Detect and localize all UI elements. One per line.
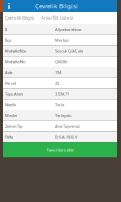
staticText: 22 xyxy=(55,80,59,86)
staticText: İl xyxy=(5,27,7,32)
staticText: Merkez xyxy=(55,37,69,43)
staticText: Pafta xyxy=(5,134,13,140)
staticText: Mahalle/No xyxy=(5,59,25,64)
button[interactable]: Çevrelik Bilgisi xyxy=(5,12,34,24)
staticText: Mahalle/Köy xyxy=(5,48,26,54)
staticText: Çevrelik Bilgisi xyxy=(5,15,34,21)
button[interactable]: Arsa/Bit Listesi xyxy=(41,12,73,24)
staticText: B:0-A-18-B-V xyxy=(55,134,77,140)
staticText: İlçe xyxy=(5,37,11,43)
staticText: (26636) xyxy=(55,59,67,64)
button[interactable]: Info xyxy=(3,0,15,12)
staticText: 3.594,71 xyxy=(55,91,69,97)
staticText: Afyonkarahisar xyxy=(55,27,82,32)
staticText: Parsel xyxy=(5,80,16,86)
staticText: Sevcuk Göl/Çaltı xyxy=(55,48,83,54)
staticText: Tapu Alanı xyxy=(5,91,23,97)
staticText: Arsa/Bit Listesi xyxy=(41,15,73,21)
staticText: Favorilere ekle xyxy=(46,147,73,153)
staticText: Nitelik xyxy=(5,102,16,107)
button[interactable]: Favorilere ekle xyxy=(3,142,117,157)
staticText: Zemin Tip xyxy=(5,123,22,129)
staticText: Tarla xyxy=(55,102,64,107)
staticText: 194 xyxy=(55,70,61,75)
staticText: Mevkii xyxy=(5,113,17,118)
staticText: Çevrelik Bilgisi xyxy=(35,2,78,10)
staticText: Ana Taşınmaz xyxy=(55,123,80,129)
staticText: Tarlayolu xyxy=(55,113,71,118)
staticText: Ada xyxy=(5,70,12,75)
